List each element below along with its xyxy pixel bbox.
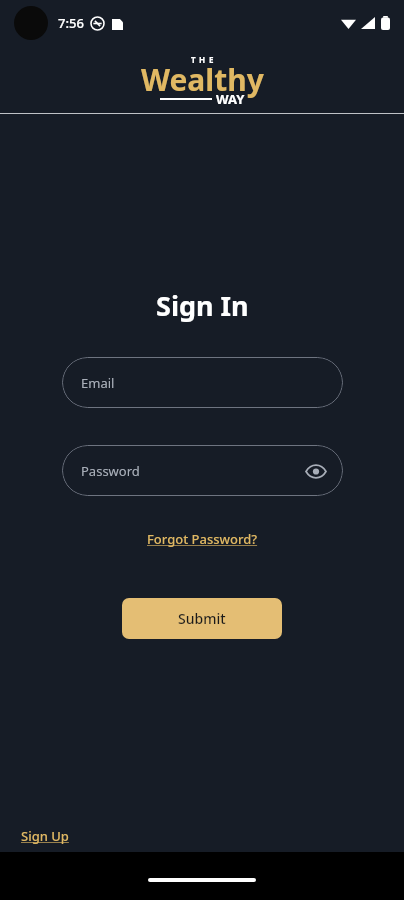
- staticText: Forgot Password?: [147, 530, 258, 548]
- staticText: E: [209, 54, 214, 65]
- staticText: Submit: [178, 609, 226, 628]
- button[interactable]: Forgot Password?: [141, 527, 264, 551]
- staticText: 7:56: [58, 14, 84, 32]
- staticText: T: [191, 54, 196, 65]
- staticText: Wealthy: [141, 59, 264, 100]
- button[interactable]: Password: [62, 445, 343, 496]
- button[interactable]: Sign Up: [18, 824, 72, 848]
- staticText: Email: [81, 374, 115, 392]
- staticText: WAY: [216, 90, 245, 108]
- staticText: Sign In: [156, 287, 249, 324]
- staticText: Password: [81, 462, 140, 480]
- staticText: H: [199, 54, 206, 65]
- button[interactable]: Submit: [122, 598, 282, 639]
- button[interactable]: Email: [62, 357, 343, 408]
- staticText: Sign Up: [21, 827, 69, 845]
- button[interactable]: Show password: [303, 458, 329, 484]
